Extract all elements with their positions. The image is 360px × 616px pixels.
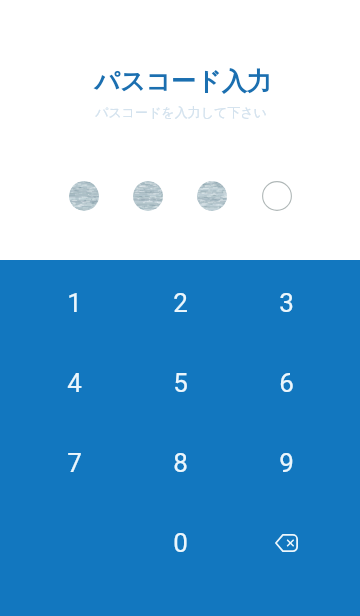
button[interactable]: 7 <box>24 425 124 501</box>
button[interactable]: 2 <box>130 265 230 341</box>
staticText: 4 <box>67 368 82 398</box>
button[interactable]: 6 <box>236 345 336 421</box>
button[interactable]: 9 <box>236 425 336 501</box>
button[interactable]: 8 <box>130 425 230 501</box>
button[interactable]: 5 <box>130 345 230 421</box>
staticText: パスコード入力 <box>3 66 360 97</box>
staticText: 9 <box>279 448 294 478</box>
button[interactable]: 0 <box>130 505 230 581</box>
staticText: 8 <box>173 448 188 478</box>
button[interactable]: 3 <box>236 265 336 341</box>
staticText: 0 <box>173 528 188 558</box>
button[interactable]: 1 <box>24 265 124 341</box>
staticText: 7 <box>67 448 82 478</box>
staticText: 6 <box>279 368 294 398</box>
staticText: 5 <box>173 368 188 398</box>
button[interactable]: 4 <box>24 345 124 421</box>
button[interactable]: Delete last digit <box>236 505 336 581</box>
staticText: 1 <box>67 288 82 318</box>
staticText: 3 <box>279 288 294 318</box>
staticText: 2 <box>173 288 188 318</box>
staticText: パスコードを入力して下さい <box>1 104 360 120</box>
